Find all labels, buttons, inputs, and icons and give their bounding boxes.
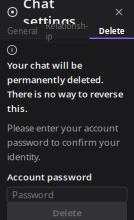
staticText: Delete xyxy=(52,206,81,219)
staticText: Delete xyxy=(99,25,125,36)
button[interactable]: Password xyxy=(7,187,127,202)
button[interactable]: Relationship xyxy=(45,24,89,39)
staticText: Relationship xyxy=(45,21,88,42)
button[interactable]: Close xyxy=(111,4,127,20)
staticText: Please enter your account password to co… xyxy=(7,122,120,163)
button[interactable]: Delete xyxy=(7,202,127,220)
staticText: Password xyxy=(12,188,54,201)
staticText: General xyxy=(7,26,37,36)
staticText: Chat settings xyxy=(23,0,76,30)
staticText: Your chat will be permanently deleted. T… xyxy=(7,59,123,115)
button[interactable]: Delete xyxy=(89,24,134,39)
staticText: Account password xyxy=(7,171,92,183)
button[interactable]: General xyxy=(0,24,45,39)
